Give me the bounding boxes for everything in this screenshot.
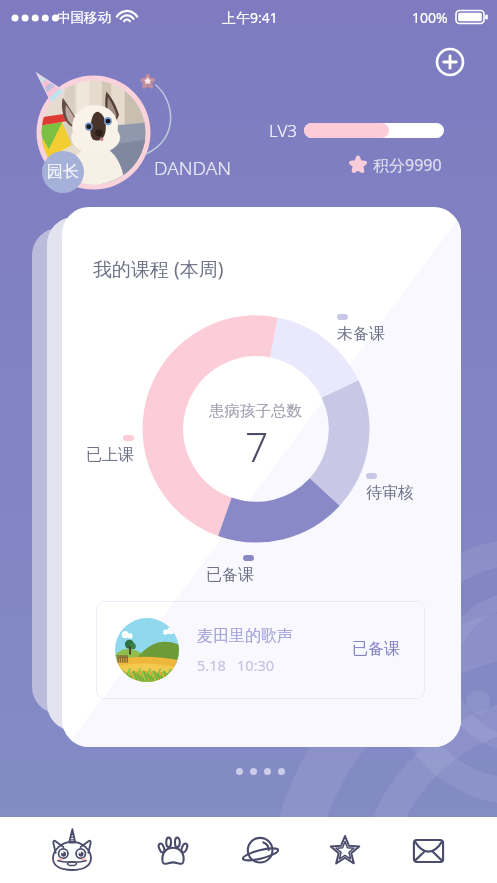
staticText: 患病孩子总数: [209, 401, 302, 421]
button[interactable]: Discover: [227, 818, 293, 883]
staticText: 已上课: [86, 445, 134, 465]
staticText: 7: [245, 418, 269, 474]
staticText: 待审核: [366, 483, 414, 503]
staticText: 已备课: [352, 639, 400, 659]
staticText: 100%: [412, 8, 448, 27]
staticText: 5.18 10:30: [197, 655, 275, 675]
staticText: 上午9:41: [222, 8, 278, 27]
staticText: 积分9990: [373, 154, 442, 176]
button[interactable]: Home: [39, 816, 105, 882]
staticText: 我的课程 (本周): [93, 256, 224, 282]
button[interactable]: 麦田里的歌声: [96, 601, 425, 699]
button[interactable]: Favorites: [312, 816, 378, 882]
button[interactable]: 园长: [42, 151, 84, 193]
staticText: 已备课: [206, 565, 254, 585]
button[interactable]: [304, 123, 444, 138]
staticText: 未备课: [337, 324, 385, 344]
button[interactable]: Messages: [395, 818, 461, 883]
button[interactable]: Add: [433, 45, 467, 79]
staticText: 中国移动: [57, 9, 111, 26]
staticText: 园长: [47, 162, 79, 182]
staticText: DANDAN: [154, 155, 232, 181]
button[interactable]: Pets: [140, 818, 206, 883]
staticText: LV3: [269, 119, 297, 142]
staticText: 麦田里的歌声: [197, 626, 293, 646]
